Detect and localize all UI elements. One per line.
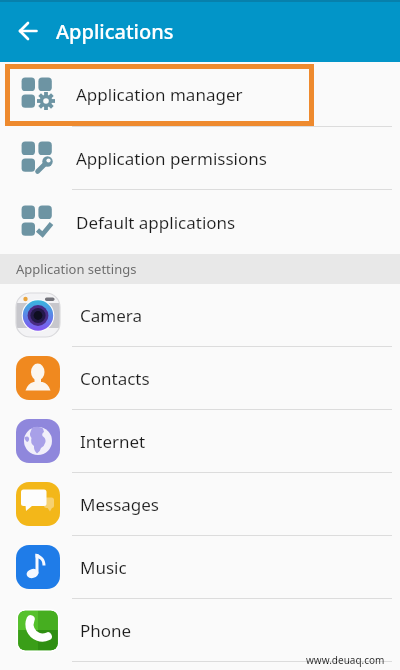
staticText: Camera: [80, 304, 142, 327]
staticText: www.deuaq.com: [306, 653, 385, 667]
staticText: Applications: [56, 18, 174, 45]
staticText: Application manager: [76, 83, 243, 106]
staticText: Default applications: [76, 211, 236, 234]
button[interactable]: Application manager: [0, 62, 400, 126]
button[interactable]: Camera: [0, 284, 400, 346]
staticText: Application permissions: [76, 147, 267, 170]
button[interactable]: Messages: [0, 473, 400, 535]
staticText: Contacts: [80, 367, 150, 390]
button[interactable]: Application permissions: [0, 127, 400, 189]
staticText: Messages: [80, 493, 160, 516]
button[interactable]: Music: [0, 536, 400, 598]
staticText: Music: [80, 556, 127, 579]
button[interactable]: Internet: [0, 410, 400, 472]
staticText: Application settings: [16, 260, 137, 278]
button[interactable]: [0, 0, 56, 62]
staticText: Internet: [80, 430, 146, 453]
button[interactable]: Contacts: [0, 347, 400, 409]
staticText: Phone: [80, 619, 132, 642]
button[interactable]: Default applications: [0, 190, 400, 254]
button[interactable]: Phone: [0, 599, 400, 661]
